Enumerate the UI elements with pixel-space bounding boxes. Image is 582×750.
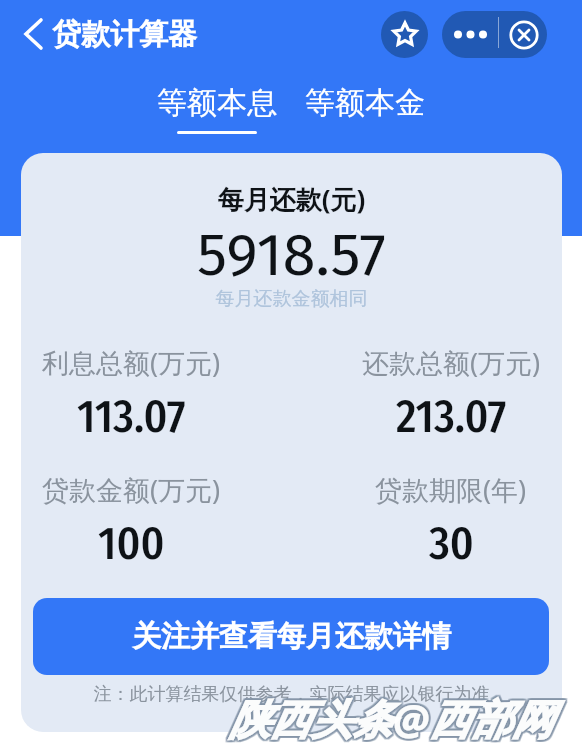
button[interactable]: Close <box>501 11 547 58</box>
staticText: 陕西头条@西部网 <box>227 689 551 745</box>
staticText: 还款总额(万元) <box>362 344 541 381</box>
staticText: 陕西头条@西部网 <box>227 692 551 748</box>
staticText: 陕西头条@西部网 <box>229 688 553 744</box>
button[interactable]: 等额本息 <box>157 84 277 134</box>
button[interactable]: 等额本金 <box>305 84 425 122</box>
staticText: 陕西头条@西部网 <box>229 692 553 748</box>
staticText: 每月还款金额相同 <box>21 287 562 311</box>
staticText: 113.07 <box>77 390 186 444</box>
staticText: 注：此计算结果仅供参考，实际结果应以银行为准 <box>21 683 562 706</box>
staticText: 陕西头条@西部网 <box>231 689 555 745</box>
button[interactable]: Back <box>14 15 52 53</box>
button[interactable]: More options <box>442 11 498 58</box>
staticText: 陕西头条@西部网 <box>230 689 554 745</box>
staticText: 陕西头条@西部网 <box>230 691 554 747</box>
staticText: 陕西头条@西部网 <box>231 690 555 746</box>
staticText: 陕西头条@西部网 <box>227 690 551 746</box>
staticText: 陕西头条@西部网 <box>230 688 554 744</box>
staticText: 陕西头条@西部网 <box>231 688 555 744</box>
staticText: 陕西头条@西部网 <box>229 689 553 745</box>
staticText: 等额本金 <box>305 84 425 122</box>
staticText: 陕西头条@西部网 <box>227 688 551 744</box>
staticText: 30 <box>429 517 474 571</box>
staticText: 陕西头条@西部网 <box>227 691 551 747</box>
staticText: 213.07 <box>396 390 507 444</box>
button[interactable]: Favorite <box>381 11 428 58</box>
staticText: 陕西头条@西部网 <box>228 691 552 747</box>
staticText: 陕西头条@西部网 <box>230 690 554 746</box>
staticText: 陕西头条@西部网 <box>228 690 552 746</box>
staticText: 陕西头条@西部网 <box>231 692 555 748</box>
staticText: 贷款期限(年) <box>375 471 527 508</box>
staticText: 贷款金额(万元) <box>42 471 221 508</box>
staticText: 陕西头条@西部网 <box>228 688 552 744</box>
staticText: 贷款计算器 <box>52 16 197 53</box>
staticText: 每月还款(元) <box>21 181 562 217</box>
staticText: 陕西头条@西部网 <box>229 691 553 747</box>
staticText: 陕西头条@西部网 <box>228 689 552 745</box>
button[interactable]: 关注并查看每月还款详情 <box>33 598 549 675</box>
staticText: 关注并查看每月还款详情 <box>132 618 451 655</box>
staticText: 等额本息 <box>157 84 277 122</box>
staticText: 利息总额(万元) <box>42 344 221 381</box>
staticText: 陕西头条@西部网 <box>231 691 555 747</box>
staticText: 陕西头条@西部网 <box>228 692 552 748</box>
staticText: 5918.57 <box>21 219 562 291</box>
staticText: 陕西头条@西部网 <box>229 690 553 746</box>
staticText: 陕西头条@西部网 <box>230 692 554 748</box>
staticText: 100 <box>98 517 165 571</box>
